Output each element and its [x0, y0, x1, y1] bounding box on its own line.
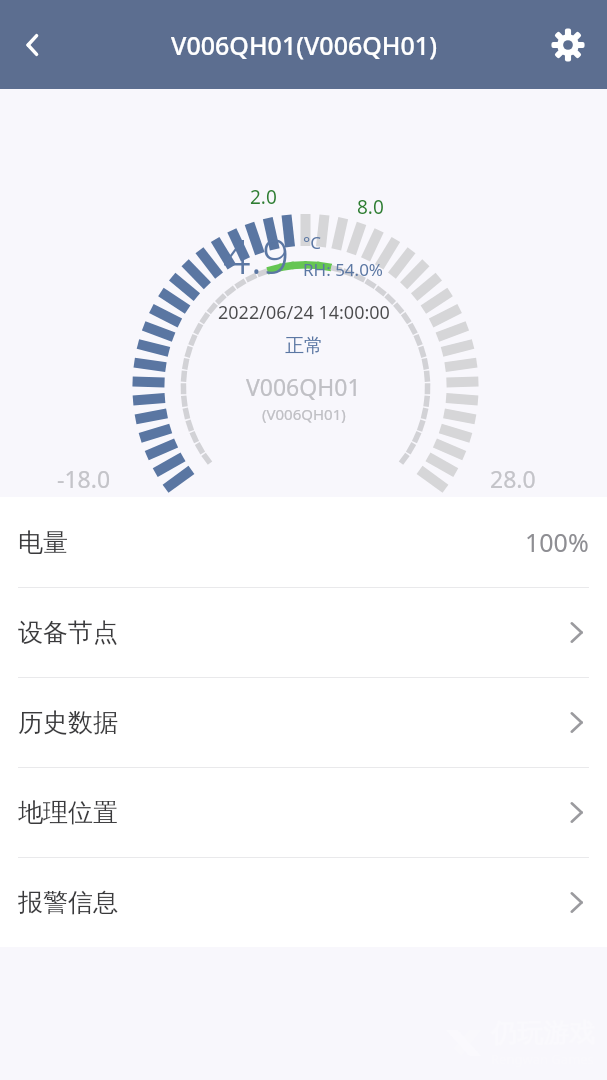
staticText: 报警信息	[18, 887, 118, 918]
staticText: 正常	[285, 334, 323, 358]
button[interactable]: Back	[4, 16, 62, 74]
button[interactable]: 历史数据	[0, 678, 607, 767]
staticText: 历史数据	[18, 707, 118, 738]
staticText: V006QH01	[246, 371, 361, 402]
staticText: 2.0	[250, 184, 277, 210]
button[interactable]: Settings	[539, 16, 597, 74]
staticText: 8.0	[357, 194, 384, 220]
staticText: 2022/06/24 14:00:00	[218, 300, 390, 325]
staticText: 100%	[525, 525, 589, 559]
button[interactable]: 设备节点	[0, 588, 607, 677]
staticText: -18.0	[57, 463, 111, 494]
staticText: 电量	[18, 527, 68, 558]
staticText: RH: 54.0%	[303, 258, 384, 281]
button[interactable]: 地理位置	[0, 768, 607, 857]
staticText: 28.0	[490, 463, 536, 494]
staticText: 4.9	[223, 223, 290, 288]
staticText: 设备节点	[18, 617, 118, 648]
button[interactable]: 报警信息	[0, 858, 607, 947]
staticText: V006QH01(V006QH01)	[171, 28, 437, 62]
staticText: 地理位置	[18, 797, 118, 828]
button[interactable]: 电量	[0, 497, 607, 587]
staticText: (V006QH01)	[262, 404, 346, 424]
staticText: °C	[303, 231, 322, 254]
